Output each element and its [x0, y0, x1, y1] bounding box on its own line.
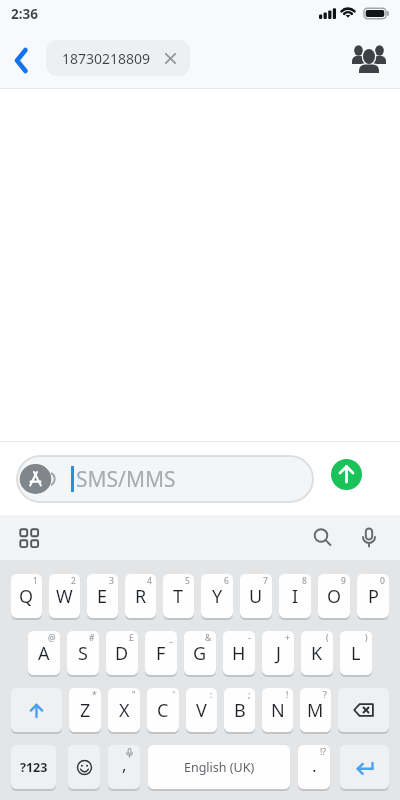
staticText: _	[169, 632, 173, 644]
button[interactable]: N	[262, 688, 293, 732]
button[interactable]: M	[300, 688, 331, 732]
button[interactable]: E	[87, 574, 118, 618]
staticText: (	[326, 632, 329, 644]
button[interactable]: D	[106, 631, 138, 675]
button[interactable]: ,	[108, 745, 140, 789]
button[interactable]: SMS/MMS	[16, 455, 314, 503]
staticText: D	[115, 641, 129, 666]
button[interactable]	[340, 745, 389, 789]
button[interactable]	[12, 522, 46, 554]
staticText: U	[249, 584, 263, 609]
button[interactable]	[347, 38, 391, 80]
staticText: +	[285, 632, 290, 644]
button[interactable]: X	[108, 688, 140, 732]
button[interactable]	[338, 688, 389, 732]
staticText: .	[312, 754, 317, 777]
staticText: 1	[33, 575, 38, 587]
staticText: I	[292, 584, 299, 609]
button[interactable]: W	[49, 574, 80, 618]
staticText: 4	[147, 575, 152, 587]
staticText: N	[271, 698, 285, 723]
staticText: ,	[122, 753, 127, 776]
staticText: O	[327, 584, 342, 609]
button[interactable]	[68, 745, 100, 789]
button[interactable]: T	[163, 574, 194, 618]
staticText: M	[307, 698, 324, 723]
button[interactable]: S	[67, 631, 99, 675]
staticText: :	[210, 689, 213, 701]
staticText: 2:36	[11, 5, 38, 23]
button[interactable]: Y	[201, 574, 233, 618]
button[interactable]: A	[28, 631, 60, 675]
staticText: 6	[224, 575, 229, 587]
staticText: V	[196, 698, 207, 723]
staticText: B	[234, 698, 246, 723]
button[interactable]: O	[318, 574, 350, 618]
staticText: SMS/MMS	[76, 465, 176, 494]
button[interactable]: ?123	[11, 745, 56, 789]
staticText: ?	[323, 689, 327, 701]
button[interactable]	[306, 522, 339, 554]
staticText: Z	[80, 698, 91, 723]
staticText: £	[129, 632, 134, 644]
staticText: ;	[248, 689, 251, 701]
staticText: Q	[19, 584, 34, 609]
button[interactable]: P	[357, 574, 389, 618]
staticText: X	[119, 698, 130, 723]
staticText: 5	[185, 575, 190, 587]
staticText: #	[89, 632, 95, 644]
staticText: 9	[341, 575, 346, 587]
staticText: L	[351, 641, 361, 666]
staticText: *	[92, 689, 97, 701]
button[interactable]: J	[262, 631, 294, 675]
button[interactable]: C	[147, 688, 179, 732]
button[interactable]: Z	[69, 688, 101, 732]
button[interactable]: .	[298, 745, 330, 789]
button[interactable]: B	[224, 688, 255, 732]
staticText: )	[365, 632, 368, 644]
staticText: '	[173, 689, 175, 701]
staticText: R	[135, 584, 147, 609]
staticText: H	[232, 641, 246, 666]
staticText: 8	[302, 575, 307, 587]
button[interactable]: V	[186, 688, 217, 732]
staticText: P	[368, 584, 379, 609]
button[interactable]: H	[223, 631, 255, 675]
staticText: &	[205, 632, 212, 644]
staticText: 2	[71, 575, 76, 587]
button[interactable]	[331, 459, 362, 490]
button[interactable]	[6, 40, 36, 80]
button[interactable]	[352, 522, 386, 554]
staticText: !	[286, 689, 289, 701]
staticText: "	[132, 689, 136, 701]
staticText: A	[38, 641, 50, 666]
button[interactable]: K	[301, 631, 333, 675]
button[interactable]: L	[340, 631, 372, 675]
staticText: W	[56, 584, 73, 609]
staticText: F	[156, 641, 166, 666]
button[interactable]: F	[145, 631, 177, 675]
button[interactable]	[11, 688, 62, 732]
staticText: ?123	[20, 759, 48, 776]
staticText: Y	[212, 584, 223, 609]
staticText: S	[78, 641, 88, 666]
staticText: 0	[380, 575, 385, 587]
staticText: T	[173, 584, 184, 609]
staticText: English (UK)	[184, 759, 255, 776]
button[interactable]: Q	[11, 574, 42, 618]
button[interactable]: I	[279, 574, 311, 618]
button[interactable]: R	[125, 574, 156, 618]
staticText: 7	[263, 575, 268, 587]
staticText: 3	[109, 575, 114, 587]
staticText: 18730218809	[62, 49, 151, 68]
staticText: G	[193, 641, 207, 666]
staticText: E	[97, 584, 108, 609]
button[interactable]: 18730218809	[46, 40, 190, 76]
staticText: -	[248, 632, 251, 644]
staticText: K	[311, 641, 323, 666]
button[interactable]: G	[184, 631, 216, 675]
button[interactable]: U	[240, 574, 272, 618]
button[interactable]: English (UK)	[148, 745, 290, 789]
staticText: C	[157, 698, 169, 723]
staticText: J	[276, 641, 281, 666]
